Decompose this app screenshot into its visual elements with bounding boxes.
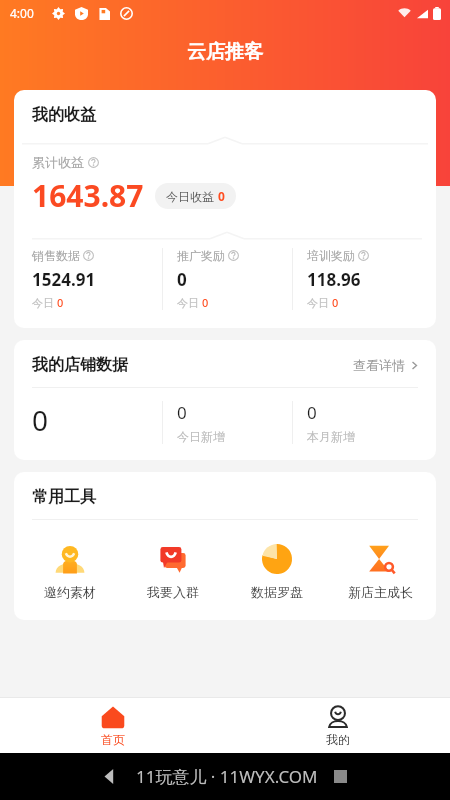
staticText: 我的店铺数据	[32, 355, 128, 375]
staticText: 推广奖励	[177, 248, 225, 263]
staticText: 0	[307, 401, 317, 424]
staticText: 118.96	[307, 268, 361, 291]
button[interactable]: 首页	[0, 698, 225, 753]
staticText: 11玩意儿 · 11WYX.COM	[136, 765, 318, 788]
button[interactable]: 今日收益	[155, 183, 236, 209]
button[interactable]: 我要入群	[125, 542, 221, 602]
staticText: 累计收益	[32, 154, 84, 170]
staticText: 0	[57, 295, 64, 310]
button[interactable]: 我的	[225, 698, 450, 753]
staticText: 今日	[32, 295, 57, 310]
staticText: 今日收益	[166, 188, 218, 204]
staticText: 数据罗盘	[251, 584, 303, 600]
staticText: 1643.87	[32, 175, 144, 216]
staticText: 4:00	[10, 5, 34, 21]
staticText: 今日新增	[177, 429, 225, 444]
staticText: 0	[177, 268, 187, 291]
button[interactable]: 我的店铺数据	[14, 340, 436, 387]
staticText: 我的	[326, 732, 350, 747]
staticText: 0	[218, 188, 225, 204]
staticText: 0	[177, 401, 187, 424]
staticText: 今日	[177, 295, 202, 310]
button[interactable]: 新店主成长	[332, 542, 428, 602]
staticText: 我的收益	[32, 105, 96, 125]
button[interactable]: 数据罗盘	[229, 542, 325, 602]
staticText: 邀约素材	[44, 584, 96, 600]
staticText: 今日	[307, 295, 332, 310]
staticText: 培训奖励	[307, 248, 355, 263]
staticText: 新店主成长	[348, 584, 413, 600]
staticText: 1524.91	[32, 268, 96, 291]
staticText: 0	[32, 401, 49, 439]
staticText: 本月新增	[307, 429, 355, 444]
staticText: 常用工具	[32, 487, 96, 507]
staticText: 查看详情	[353, 357, 405, 373]
staticText: 首页	[101, 732, 125, 747]
button[interactable]: 邀约素材	[22, 542, 118, 602]
staticText: 我要入群	[147, 584, 199, 600]
staticText: 云店推客	[187, 40, 263, 64]
staticText: 销售数据	[32, 248, 80, 263]
staticText: 0	[202, 295, 209, 310]
staticText: 0	[332, 295, 339, 310]
other: Back	[103, 769, 118, 784]
